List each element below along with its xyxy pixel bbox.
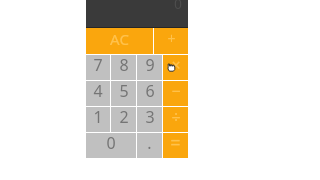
staticText: AC: [110, 29, 129, 49]
button[interactable]: 3: [137, 107, 162, 132]
staticText: 0: [174, 0, 183, 13]
button[interactable]: divide: [163, 107, 188, 132]
button[interactable]: multiply: [163, 55, 188, 80]
staticText: −: [171, 80, 181, 102]
button[interactable]: All clear: [86, 28, 153, 54]
button[interactable]: decimal point: [137, 133, 162, 158]
button[interactable]: 2: [111, 107, 136, 132]
button[interactable]: minus: [163, 81, 188, 106]
staticText: 8: [119, 54, 129, 76]
staticText: ×: [171, 54, 181, 76]
staticText: 6: [145, 80, 155, 102]
staticText: 7: [93, 54, 103, 76]
staticText: 0: [106, 132, 116, 154]
button[interactable]: 7: [86, 55, 110, 80]
staticText: 3: [145, 106, 155, 128]
staticText: +: [167, 29, 176, 48]
button[interactable]: 5: [111, 81, 136, 106]
button[interactable]: 6: [137, 81, 162, 106]
button[interactable]: plus: [154, 28, 188, 54]
staticText: 5: [119, 80, 129, 102]
button[interactable]: 1: [86, 107, 110, 132]
button[interactable]: equals: [163, 133, 188, 158]
button[interactable]: 8: [111, 55, 136, 80]
staticText: 4: [93, 80, 103, 102]
button[interactable]: 0: [86, 133, 136, 158]
staticText: .: [147, 132, 152, 154]
button[interactable]: 9: [137, 55, 162, 80]
staticText: ÷: [171, 106, 181, 128]
button[interactable]: 4: [86, 81, 110, 106]
staticText: =: [170, 130, 181, 155]
staticText: 9: [145, 54, 155, 76]
staticText: 1: [93, 106, 103, 128]
staticText: 2: [119, 106, 129, 128]
